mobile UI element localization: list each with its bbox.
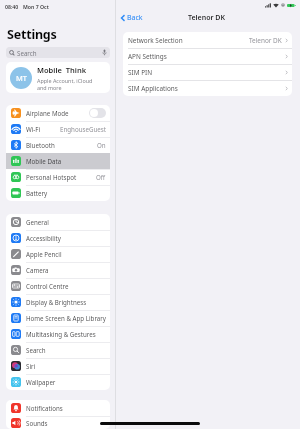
button[interactable]: Wallpaper — [6, 374, 110, 390]
staticText: Apple Pencil — [26, 250, 62, 258]
button[interactable]: Notifications — [6, 400, 110, 416]
staticText: and more — [37, 84, 62, 91]
staticText: SIM Applications — [128, 84, 178, 93]
staticText: Siri — [26, 362, 36, 370]
staticText: Accessibility — [26, 234, 61, 242]
staticText: Home Screen & App Library — [26, 314, 106, 322]
button[interactable]: Battery — [6, 185, 110, 201]
staticText: Sounds — [26, 419, 48, 427]
staticText: Mobile Think — [37, 65, 87, 75]
button[interactable]: Wi-Fi — [6, 121, 110, 137]
button[interactable]: Search — [6, 47, 110, 58]
staticText: Personal Hotspot — [26, 173, 77, 181]
button[interactable]: SIM PIN — [123, 64, 292, 80]
staticText: Network Selection — [128, 36, 183, 45]
staticText: EnghouseGuest — [60, 125, 106, 133]
staticText: Mon 7 Oct — [23, 3, 49, 10]
button[interactable]: Bluetooth — [6, 137, 110, 153]
staticText: Search — [17, 49, 37, 57]
staticText: Multitasking & Gestures — [26, 330, 96, 338]
button[interactable]: APN Settings — [123, 48, 292, 64]
button[interactable]: SIM Applications — [123, 80, 292, 96]
staticText: Wallpaper — [26, 378, 56, 386]
staticText: Telenor DK — [249, 36, 282, 45]
staticText: Control Centre — [26, 282, 69, 290]
staticText: Notifications — [26, 404, 63, 412]
button[interactable]: Sounds — [6, 416, 110, 429]
staticText: Wi-Fi — [26, 125, 41, 133]
staticText: General — [26, 218, 49, 226]
staticText: Battery — [26, 189, 48, 197]
staticText: Off — [96, 173, 106, 181]
staticText: Bluetooth — [26, 141, 55, 149]
staticText: Display & Brightness — [26, 298, 87, 306]
button[interactable]: Network Selection — [123, 32, 292, 48]
button[interactable]: Mobile Data — [6, 153, 110, 169]
staticText: Telenor DK — [188, 13, 225, 23]
staticText: Back — [127, 13, 143, 23]
button[interactable]: Personal Hotspot — [6, 169, 110, 185]
button[interactable]: Accessibility — [6, 230, 110, 246]
staticText: Mobile Data — [26, 157, 62, 165]
button[interactable]: Multitasking & Gestures — [6, 326, 110, 342]
button[interactable]: Search — [6, 342, 110, 358]
staticText: Search — [26, 346, 46, 354]
button[interactable]: Back — [119, 11, 145, 25]
staticText: Camera — [26, 266, 49, 274]
button[interactable]: General — [6, 214, 110, 230]
staticText: MT — [16, 73, 27, 83]
staticText: 08:40 — [5, 3, 19, 10]
button[interactable]: Camera — [6, 262, 110, 278]
button[interactable]: Apple Pencil — [6, 246, 110, 262]
staticText: APN Settings — [128, 52, 167, 61]
button[interactable]: Siri — [6, 358, 110, 374]
staticText: SIM PIN — [128, 68, 153, 77]
button[interactable]: MT — [6, 62, 110, 93]
button[interactable]: Display & Brightness — [6, 294, 110, 310]
staticText: On — [97, 141, 106, 149]
button[interactable]: Control Centre — [6, 278, 110, 294]
staticText: Settings — [7, 26, 57, 43]
staticText: Apple Account, iCloud — [37, 77, 93, 84]
button[interactable]: Home Screen & App Library — [6, 310, 110, 326]
staticText: Airplane Mode — [26, 109, 69, 117]
button[interactable]: Airplane Mode — [6, 105, 110, 121]
